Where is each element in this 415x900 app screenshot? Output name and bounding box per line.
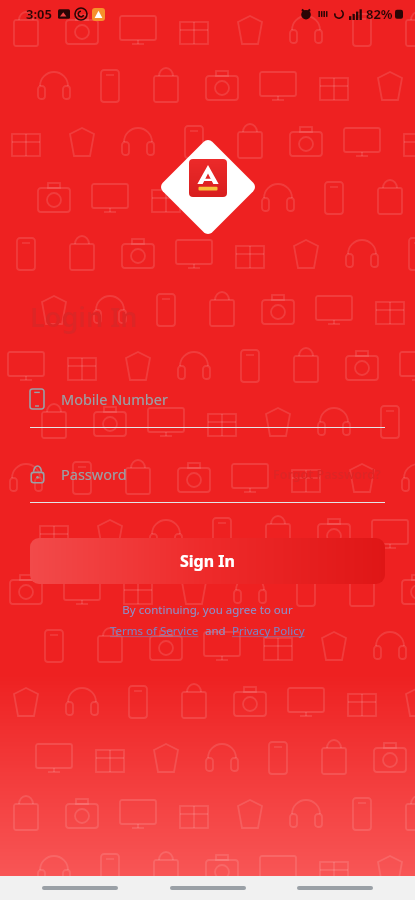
button[interactable]: Privacy Policy — [232, 623, 305, 639]
other: App logo — [189, 159, 227, 197]
button[interactable]: Sign In — [30, 538, 385, 584]
button[interactable]: Mobile Number — [30, 383, 385, 415]
staticText: Privacy Policy — [232, 623, 305, 639]
button[interactable]: Navigation — [170, 886, 246, 890]
staticText: 82% — [366, 5, 393, 23]
staticText: Password — [61, 464, 127, 484]
button[interactable]: Navigation — [297, 886, 373, 890]
button[interactable]: Terms of Service — [110, 623, 199, 639]
button[interactable]: Password — [30, 464, 269, 484]
staticText: By continuing, you agree to our — [30, 602, 385, 618]
staticText: 3:05 — [26, 5, 52, 23]
staticText: Terms of Service — [110, 623, 199, 639]
button[interactable]: Navigation — [42, 886, 118, 890]
staticText: and — [199, 623, 232, 639]
staticText: Sign In — [180, 550, 235, 572]
staticText: Login In — [30, 298, 138, 335]
button[interactable]: Forgot Password? — [269, 462, 385, 487]
staticText: Forgot Password? — [273, 466, 381, 483]
staticText: Mobile Number — [61, 389, 168, 409]
